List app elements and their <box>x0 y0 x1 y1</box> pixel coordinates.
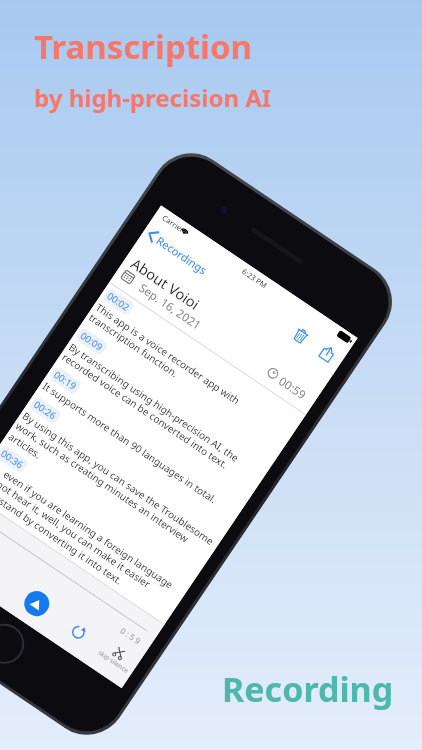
staticText: Recordings <box>154 233 210 278</box>
button[interactable]: Rewind 5 seconds <box>65 618 91 645</box>
staticText: By transcribing using high-precision AI,… <box>60 340 242 475</box>
staticText: 00:19 <box>51 368 79 393</box>
button[interactable]: 00:02 <box>86 287 301 450</box>
button[interactable]: 00:09 <box>60 327 274 490</box>
button[interactable]: Delete <box>286 319 315 351</box>
staticText: 00:02 <box>105 289 133 314</box>
staticText: Recording <box>222 666 394 712</box>
staticText: So, even if you are learning a foreign l… <box>0 458 176 612</box>
staticText: by high-precision AI <box>34 81 272 114</box>
staticText: About Voioi <box>127 253 204 314</box>
staticText: Transcription <box>34 24 253 69</box>
staticText: skip silence <box>96 648 130 675</box>
staticText: 00:09 <box>78 329 106 354</box>
staticText: By using this app, you can save the Trou… <box>6 409 217 568</box>
button[interactable]: Play <box>19 586 54 621</box>
button[interactable]: 00:36 <box>0 444 194 619</box>
button[interactable]: 00:19 <box>40 366 247 519</box>
staticText: 6:23 PM <box>240 266 270 291</box>
staticText: 00:26 <box>31 398 59 423</box>
button[interactable]: 00:26 <box>6 395 227 570</box>
button[interactable]: Recordings <box>141 222 213 283</box>
staticText: 0 : 5 9 <box>118 625 143 647</box>
button[interactable]: skip silence <box>96 639 137 675</box>
staticText: Sep. 16, 2021 <box>136 280 204 334</box>
staticText: Carrier <box>160 213 187 235</box>
button[interactable]: Share <box>313 337 342 369</box>
staticText: 00:59 <box>275 373 309 403</box>
staticText: 00:36 <box>0 447 26 472</box>
staticText: It supports more than 90 languages in to… <box>40 379 219 506</box>
staticText: This app is a voice recorder app with tr… <box>86 300 243 417</box>
